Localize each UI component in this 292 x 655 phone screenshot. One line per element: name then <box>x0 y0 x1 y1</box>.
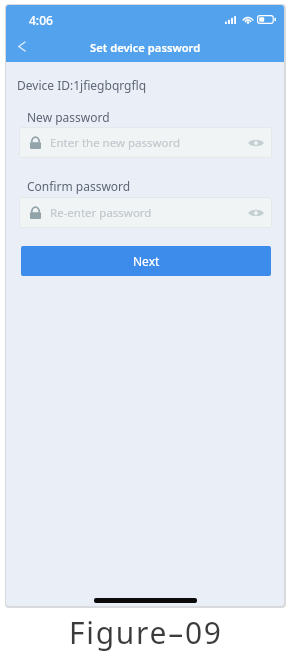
staticText: 4:06 <box>29 12 53 28</box>
button[interactable]: Show password <box>247 205 265 221</box>
button[interactable]: Re-enter password <box>19 197 272 228</box>
staticText: Set device password <box>90 40 201 55</box>
button[interactable]: Back <box>9 33 35 60</box>
staticText: New password <box>27 109 110 125</box>
button[interactable]: Enter the new password <box>19 127 272 158</box>
button[interactable]: Next <box>21 246 271 276</box>
button[interactable]: Show password <box>247 135 265 151</box>
staticText: Confirm password <box>27 178 131 194</box>
staticText: Next <box>133 253 160 269</box>
staticText: Enter the new password <box>50 135 247 151</box>
staticText: Re-enter password <box>50 205 247 221</box>
staticText: Device ID:1jfiegbqrgflq <box>17 77 147 93</box>
staticText: Figure–09 <box>69 612 223 653</box>
